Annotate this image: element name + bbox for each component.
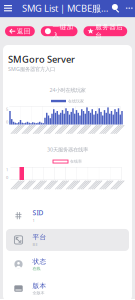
button[interactable]: 状态 [3,252,132,276]
staticText: 30天服务器在线率 [47,146,88,153]
staticText: BE [32,242,37,247]
button[interactable]: SID [3,203,132,228]
staticText: 在线玩家 [68,99,84,103]
staticText: 服务器后台 [95,23,123,39]
staticText: 在线 [32,266,40,271]
staticText: 返回 [17,27,31,35]
staticText: SMGoro Server [8,53,75,65]
staticText: 状态 [32,257,46,266]
button[interactable]: 一键加入 [41,26,77,36]
staticText: SMG服务器官方入口 [8,65,55,72]
staticText: 全版本 [32,290,44,295]
staticText: 5 [6,106,8,112]
staticText: 一键加入 [52,23,73,39]
staticText: 版本 [32,282,46,290]
staticText: 0 [6,175,8,180]
button[interactable]: Search [108,0,123,17]
button[interactable]: 服务器后台 [83,26,127,36]
staticText: 1 [6,167,8,172]
staticText: 平台 [32,233,46,241]
button[interactable]: 平台 [3,228,132,252]
staticText: 24小时在线玩家 [49,86,85,94]
staticText: 1 [32,218,34,223]
button[interactable]: More options [123,0,135,17]
staticText: SID [32,208,43,217]
staticText: 在线率 [70,159,82,164]
button[interactable]: 返回 [5,26,35,36]
staticText: 0 [6,119,8,124]
button[interactable]: Menu [0,0,16,17]
staticText: SMG List | MCBE服… [22,2,108,14]
button[interactable]: 版本 [3,276,132,300]
